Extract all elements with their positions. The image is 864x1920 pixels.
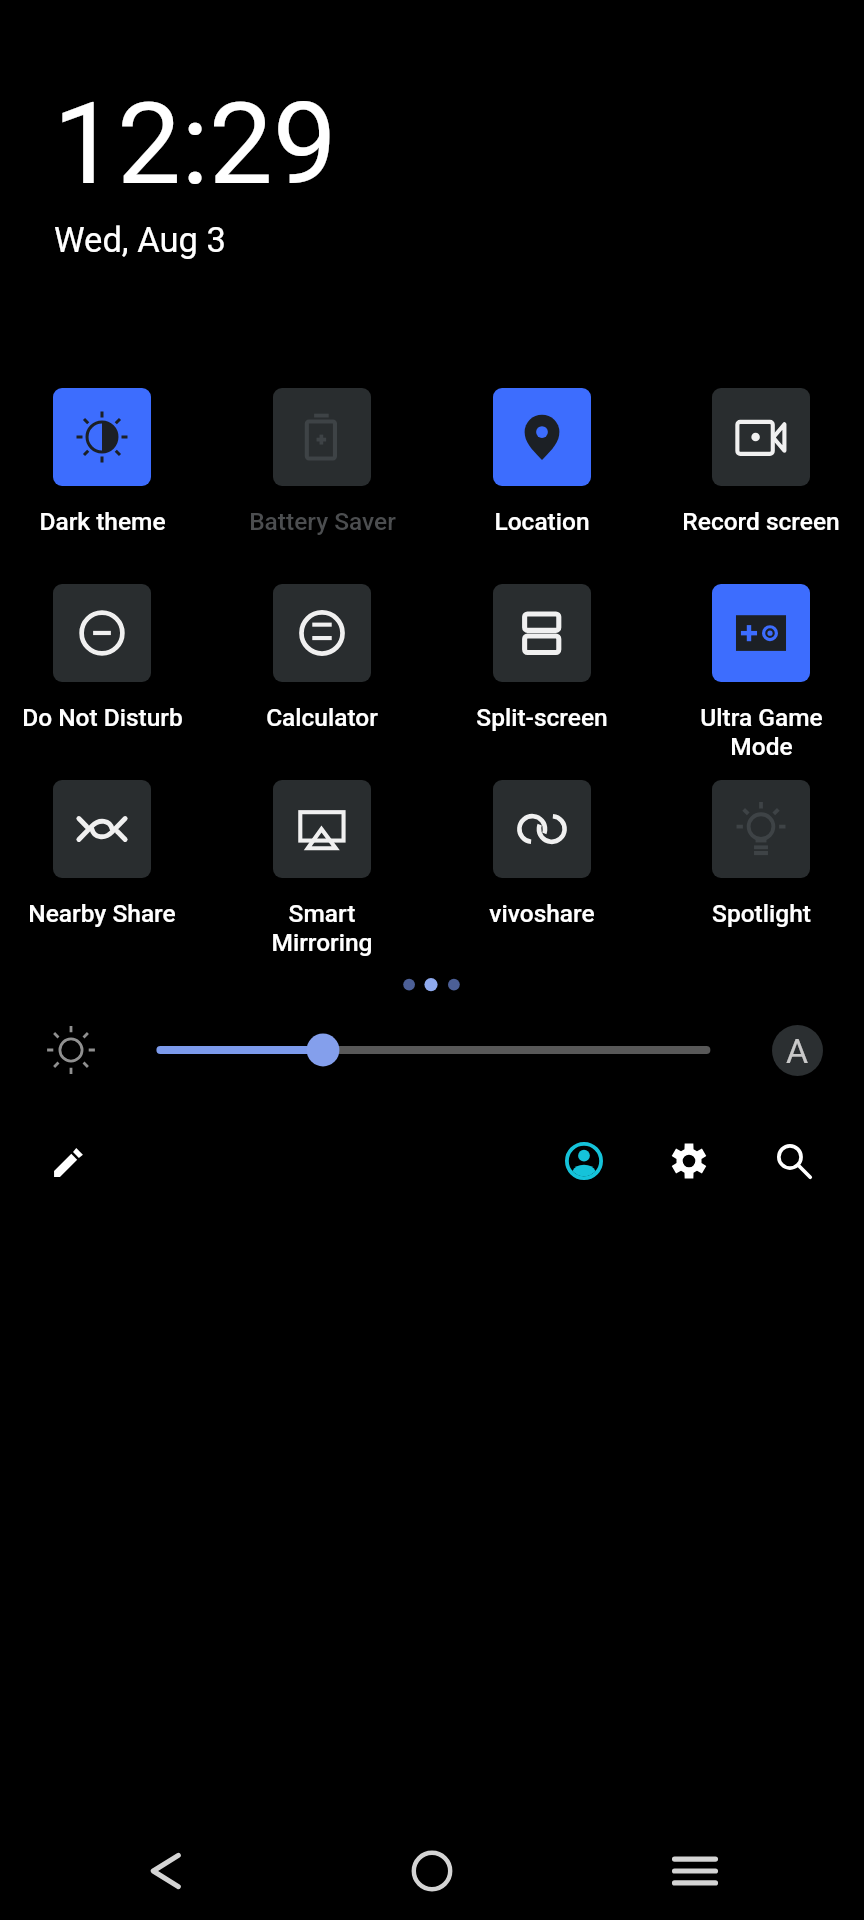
button[interactable]: Smart Mirroring — [214, 780, 430, 957]
button[interactable]: Brightness slider — [140, 1020, 724, 1080]
staticText: Spotlight — [712, 899, 811, 928]
button[interactable]: Account — [551, 1128, 617, 1194]
staticText: A — [786, 1031, 809, 1071]
staticText: vivoshare — [489, 899, 595, 928]
button[interactable]: Spotlight — [653, 780, 864, 928]
staticText: Dark theme — [39, 507, 166, 536]
button[interactable]: Record screen — [653, 388, 864, 536]
button[interactable]: Edit — [39, 1133, 98, 1192]
button[interactable]: Calculator — [214, 584, 430, 732]
button[interactable]: Search — [763, 1130, 826, 1193]
button[interactable]: Dark theme — [0, 388, 210, 536]
staticText: Nearby Share — [28, 899, 176, 928]
button[interactable]: Home — [288, 1810, 576, 1920]
button[interactable]: Ultra Game Mode — [653, 584, 864, 761]
button[interactable]: Brightness — [34, 1013, 107, 1086]
staticText: Split-screen — [476, 703, 608, 732]
button[interactable]: Nearby Share — [0, 780, 210, 928]
button[interactable]: Do Not Disturb — [0, 584, 210, 732]
button[interactable]: Battery Saver — [214, 388, 430, 536]
staticText: Smart Mirroring — [271, 899, 373, 957]
staticText: Do Not Disturb — [22, 703, 183, 732]
button[interactable]: Recent apps — [576, 1810, 864, 1920]
staticText: Record screen — [682, 507, 840, 536]
button[interactable]: Back — [0, 1810, 288, 1920]
staticText: Calculator — [266, 703, 378, 732]
button[interactable]: Split-screen — [434, 584, 650, 732]
staticText: Location — [494, 507, 590, 536]
button[interactable]: vivoshare — [434, 780, 650, 928]
staticText: Wed, Aug 3 — [54, 220, 226, 260]
button[interactable]: A — [772, 1025, 823, 1076]
staticText: 12:29 — [53, 77, 337, 211]
button[interactable]: Settings — [657, 1129, 721, 1193]
staticText: Ultra Game Mode — [700, 703, 823, 761]
staticText: Battery Saver — [249, 507, 396, 536]
button[interactable]: Location — [434, 388, 650, 536]
